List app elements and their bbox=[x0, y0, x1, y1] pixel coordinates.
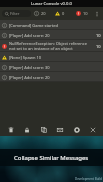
staticText: NullReferenceException: Object reference… bbox=[9, 41, 95, 51]
button[interactable]: [Player] Add score: 20 bbox=[0, 30, 103, 40]
button[interactable]: Filter bbox=[2, 10, 31, 17]
button[interactable]: Delete bbox=[4, 123, 17, 136]
button[interactable]: Close bbox=[86, 123, 99, 136]
button[interactable]: 20 bbox=[34, 9, 46, 18]
button[interactable]: More options bbox=[93, 10, 101, 18]
button[interactable]: Copy bbox=[37, 123, 50, 136]
staticText: [Player] Add score: 20 bbox=[9, 33, 95, 38]
staticText: [Player] Add score: 30 bbox=[9, 65, 101, 70]
button[interactable]: Email bbox=[53, 123, 66, 136]
button[interactable]: 10 bbox=[76, 9, 88, 18]
staticText: Lunar Console v0.0.0 bbox=[31, 1, 72, 7]
staticText: 10 bbox=[96, 44, 101, 49]
button[interactable]: [None] Spawn 10 bbox=[0, 52, 103, 62]
staticText: 20 bbox=[41, 11, 46, 16]
staticText: [Command] Game started bbox=[9, 23, 101, 28]
button[interactable]: Settings bbox=[70, 123, 83, 136]
button[interactable]: Lock bbox=[20, 123, 33, 136]
staticText: 0 bbox=[62, 11, 65, 16]
button[interactable]: 0 bbox=[55, 9, 65, 18]
staticText: 10 bbox=[96, 33, 101, 38]
staticText: [None] Spawn 10 bbox=[9, 55, 101, 60]
staticText: Development Build bbox=[75, 177, 102, 181]
button[interactable]: [Player] Add score: 20 bbox=[0, 72, 103, 82]
staticText: Filter bbox=[10, 11, 20, 16]
button[interactable]: [Player] Add score: 30 bbox=[0, 62, 103, 72]
staticText: [Player] Add score: 20 bbox=[9, 75, 101, 80]
staticText: 10 bbox=[83, 11, 88, 16]
staticText: Collapse Similar Messages bbox=[14, 154, 89, 162]
button[interactable]: [Command] Game started bbox=[0, 20, 103, 30]
button[interactable]: NullReferenceException: Object reference… bbox=[0, 40, 103, 52]
